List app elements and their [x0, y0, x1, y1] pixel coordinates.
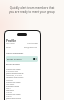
staticText: Aug 14 — [6, 99, 12, 100]
staticText: Quickly alert team members that you are … — [9, 6, 55, 14]
staticText: Changed name — [6, 85, 20, 87]
button[interactable]: Joined Dev group — [6, 97, 38, 99]
button[interactable]: Alerted the team — [6, 68, 38, 70]
staticText: Email — [6, 46, 11, 49]
staticText: Monday — [6, 79, 13, 81]
button[interactable]: Last week — [6, 83, 38, 85]
staticText: Last week — [6, 83, 15, 85]
button[interactable]: Aug 29 — [6, 91, 38, 93]
button[interactable]: Aug 21 — [6, 95, 38, 97]
button[interactable]: Signed in — [6, 89, 38, 91]
staticText: Updated your photo — [6, 76, 24, 78]
staticText: Alerted the team — [6, 81, 21, 83]
button[interactable]: Full name — [6, 42, 38, 45]
staticText: Sep 2 — [6, 87, 11, 89]
button[interactable]: Alerted the team — [6, 93, 38, 95]
staticText: Joined Design group — [6, 72, 24, 74]
staticText: Yesterday, 4:15 PM — [6, 74, 22, 76]
staticText: Profile — [6, 39, 17, 43]
staticText: Joined Dev group — [6, 97, 21, 99]
button[interactable]: 3 minutes ago — [6, 70, 38, 72]
button[interactable]: Yesterday, 4:15 PM — [6, 74, 38, 76]
button[interactable]: Updated your photo — [6, 76, 38, 78]
staticText: Aug 21 — [6, 95, 12, 97]
button[interactable]: Alerted the team — [6, 81, 38, 83]
button[interactable]: Joined Design group — [6, 72, 38, 74]
staticText: Ready to meet — [7, 58, 22, 61]
staticText: Full name — [6, 42, 15, 45]
staticText: Alerted the team — [6, 68, 21, 70]
button[interactable]: Email — [6, 46, 38, 49]
staticText: Alerted the team — [6, 93, 21, 95]
staticText: 3 minutes ago — [6, 70, 19, 72]
other: Ready to meet toggle — [33, 58, 37, 60]
button[interactable]: Ready to meet — [6, 56, 38, 62]
staticText: alex@mail.com — [24, 46, 38, 49]
button[interactable]: Sep 2 — [6, 87, 38, 89]
staticText: Signed in — [6, 89, 14, 91]
staticText: Recent activity — [6, 63, 20, 66]
staticText: Aug 29 — [6, 91, 12, 93]
staticText: Alex Morgan — [27, 42, 38, 45]
button[interactable]: Monday — [6, 79, 38, 81]
staticText: Alert Preferences — [6, 52, 24, 55]
button[interactable]: Changed name — [6, 85, 38, 87]
